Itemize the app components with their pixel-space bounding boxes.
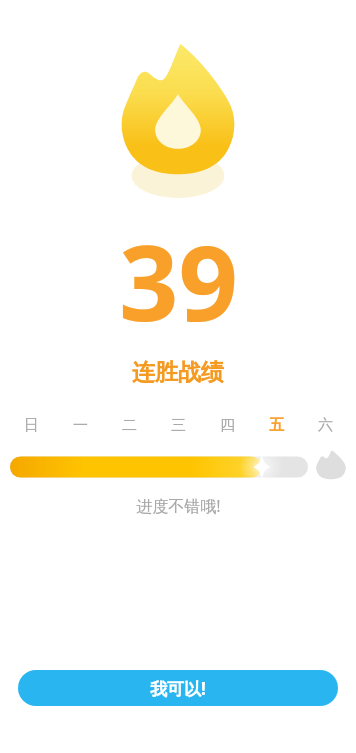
staticText: 日 [24,416,39,435]
staticText: 一 [73,416,88,435]
staticText: 39 [119,210,238,352]
button[interactable]: 我可以! [18,670,338,706]
staticText: 四 [220,416,235,435]
staticText: 二 [122,416,137,435]
button[interactable]: 五 [259,413,293,437]
staticText: 进度不错哦! [136,495,221,517]
button[interactable]: 一 [63,413,97,437]
staticText: 连胜战绩 [132,358,224,387]
other: Streak flame [103,44,253,192]
button[interactable]: 二 [112,413,146,437]
staticText: 三 [171,416,186,435]
staticText: 六 [318,416,333,435]
staticText: 五 [269,416,284,435]
button[interactable]: 三 [161,413,195,437]
button[interactable]: 日 [14,413,48,437]
staticText: 我可以! [150,677,206,700]
button[interactable]: 四 [210,413,244,437]
button[interactable]: 六 [308,413,342,437]
